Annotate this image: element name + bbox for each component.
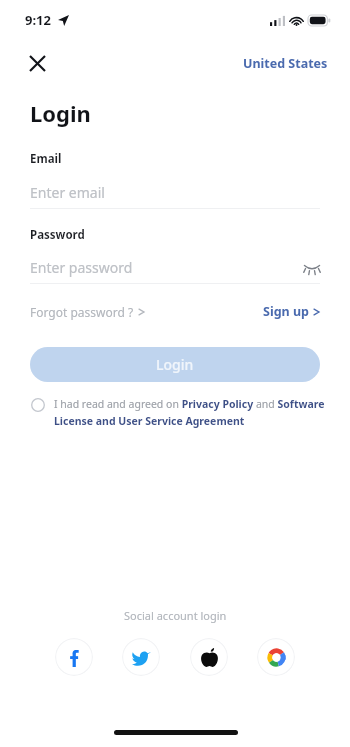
button[interactable]: Sign in with Facebook xyxy=(55,638,93,676)
staticText: I had read and agreed on Privacy Policy … xyxy=(54,397,332,428)
staticText: Email xyxy=(30,151,62,167)
button[interactable]: Close xyxy=(22,48,52,78)
button[interactable]: Agree to terms xyxy=(26,393,50,417)
button[interactable]: Show password xyxy=(296,251,328,283)
button[interactable]: Sign in with Twitter xyxy=(122,638,160,676)
button[interactable]: United States xyxy=(243,55,328,72)
staticText: United States xyxy=(243,55,328,72)
button[interactable]: Enter email xyxy=(0,176,350,208)
staticText: Login xyxy=(156,355,194,374)
staticText: Forgot password ? xyxy=(30,304,134,320)
staticText: Enter password xyxy=(30,258,133,277)
staticText: Social account login xyxy=(124,608,227,623)
staticText: 9:12 xyxy=(25,11,51,29)
staticText: Login xyxy=(30,98,91,128)
button[interactable]: Sign in with Google xyxy=(257,638,295,676)
button[interactable]: Forgot password ? xyxy=(30,304,145,320)
button[interactable]: Sign up xyxy=(263,303,320,320)
button[interactable]: Login xyxy=(30,347,320,382)
button[interactable]: Sign in with Apple xyxy=(190,638,228,676)
button[interactable]: Enter password xyxy=(0,251,350,283)
staticText: Enter email xyxy=(30,183,105,202)
staticText: Sign up xyxy=(263,303,309,320)
staticText: Password xyxy=(30,227,85,243)
